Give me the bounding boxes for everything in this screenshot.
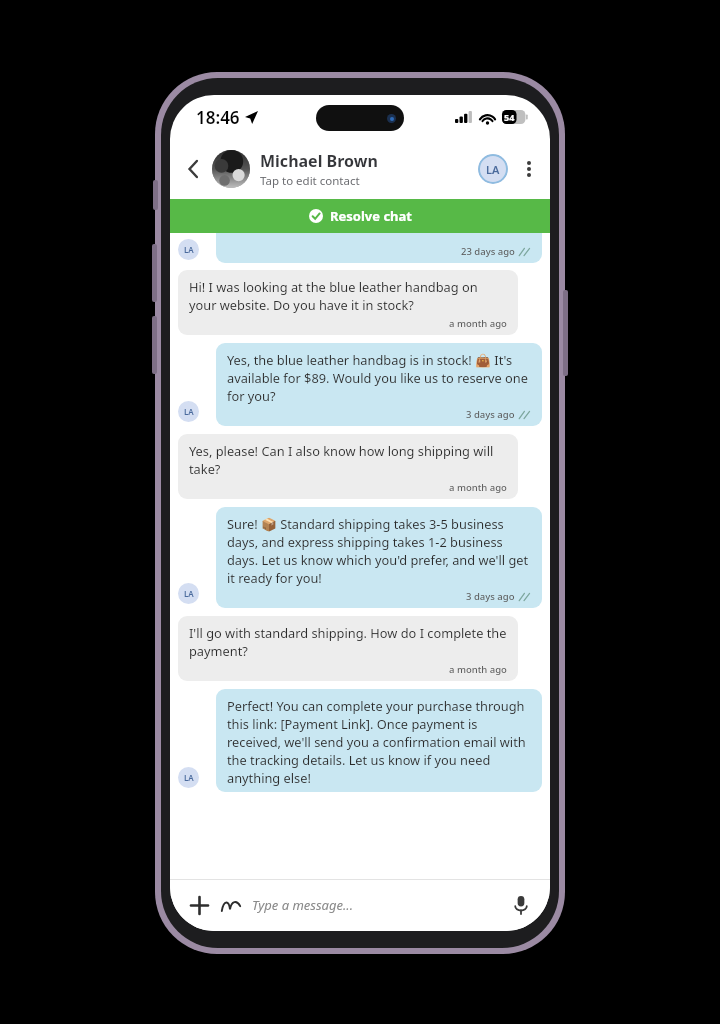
button[interactable]: LA bbox=[478, 154, 508, 184]
button[interactable]: Contact photo bbox=[212, 150, 250, 188]
staticText: Sure! 📦 Standard shipping takes 3-5 busi… bbox=[227, 515, 531, 587]
button[interactable]: Michael Brown bbox=[260, 150, 478, 189]
staticText: Yes, the blue leather handbag is in stoc… bbox=[227, 351, 531, 405]
staticText: 23 days ago bbox=[461, 245, 515, 258]
button[interactable]: Add attachment bbox=[184, 890, 214, 920]
staticText: Michael Brown bbox=[260, 150, 378, 172]
staticText: Tap to edit contact bbox=[260, 173, 360, 189]
staticText: a month ago bbox=[449, 481, 507, 494]
staticText: Perfect! You can complete your purchase … bbox=[227, 697, 531, 787]
staticText: LA bbox=[184, 244, 194, 255]
button[interactable]: Voice message bbox=[506, 890, 536, 920]
button[interactable]: More options bbox=[514, 154, 544, 184]
button[interactable]: Resolve chat bbox=[170, 199, 550, 233]
staticText: Resolve chat bbox=[330, 207, 412, 225]
staticText: 18:46 bbox=[196, 106, 240, 129]
button[interactable]: 23 days ago bbox=[216, 233, 542, 263]
button[interactable]: Type a message... bbox=[252, 896, 506, 914]
staticText: 3 days ago bbox=[466, 590, 515, 603]
button[interactable]: Yes, please! Can I also know how long sh… bbox=[178, 434, 518, 499]
button[interactable]: Back bbox=[176, 151, 212, 187]
button[interactable]: I'll go with standard shipping. How do I… bbox=[178, 616, 518, 681]
button[interactable]: Hi! I was looking at the blue leather ha… bbox=[178, 270, 518, 335]
button[interactable]: Yes, the blue leather handbag is in stoc… bbox=[216, 343, 542, 426]
staticText: Type a message... bbox=[252, 896, 353, 914]
staticText: LA bbox=[184, 588, 194, 599]
staticText: LA bbox=[486, 162, 500, 177]
staticText: LA bbox=[184, 406, 194, 417]
staticText: a month ago bbox=[449, 317, 507, 330]
button[interactable]: Sure! 📦 Standard shipping takes 3-5 busi… bbox=[216, 507, 542, 608]
staticText: 54 bbox=[504, 111, 515, 123]
staticText: Hi! I was looking at the blue leather ha… bbox=[189, 278, 507, 314]
staticText: LA bbox=[184, 772, 194, 783]
button[interactable]: Perfect! You can complete your purchase … bbox=[216, 689, 542, 792]
staticText: I'll go with standard shipping. How do I… bbox=[189, 624, 507, 660]
staticText: a month ago bbox=[449, 663, 507, 676]
button[interactable]: Signature bbox=[216, 890, 246, 920]
staticText: 3 days ago bbox=[466, 408, 515, 421]
staticText: Yes, please! Can I also know how long sh… bbox=[189, 442, 507, 478]
